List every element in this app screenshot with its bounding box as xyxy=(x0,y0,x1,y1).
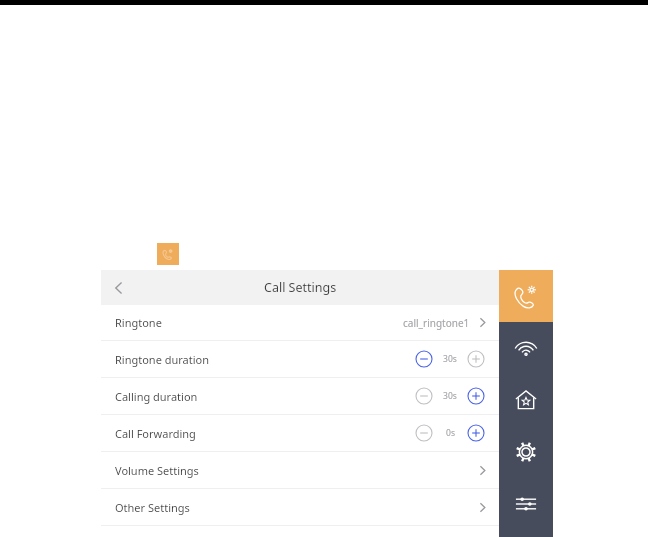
button[interactable]: Settings xyxy=(499,426,553,478)
button[interactable]: Back xyxy=(101,270,137,305)
staticText: Call Settings xyxy=(264,279,337,296)
button[interactable]: Adjustments xyxy=(499,478,553,530)
button[interactable]: Decrease Call Forwarding xyxy=(415,424,433,442)
staticText: 30s xyxy=(443,353,457,365)
button[interactable]: Home xyxy=(499,374,553,426)
button[interactable]: Call settings xyxy=(499,270,553,322)
staticText: Volume Settings xyxy=(115,463,199,478)
button[interactable]: Decrease Calling duration xyxy=(415,387,433,405)
staticText: Ringtone xyxy=(115,315,162,330)
button[interactable]: Increase Calling duration xyxy=(467,387,485,405)
staticText: 0s xyxy=(446,427,455,439)
button[interactable]: Decrease Ringtone duration xyxy=(415,350,433,368)
button[interactable]: Increase Call Forwarding xyxy=(467,424,485,442)
button[interactable]: Other Settings xyxy=(101,489,499,525)
staticText: 30s xyxy=(443,390,457,402)
staticText: Other Settings xyxy=(115,500,190,515)
button[interactable]: Ringtone xyxy=(101,305,499,340)
button[interactable]: Increase Ringtone duration xyxy=(467,350,485,368)
button[interactable]: Volume Settings xyxy=(101,452,499,488)
staticText: call_ringtone1 xyxy=(403,316,470,330)
button[interactable]: Call settings tab xyxy=(157,243,179,265)
staticText: Calling duration xyxy=(115,389,198,404)
staticText: Ringtone duration xyxy=(115,352,210,367)
button[interactable]: Network xyxy=(499,322,553,374)
staticText: Call Forwarding xyxy=(115,426,196,441)
